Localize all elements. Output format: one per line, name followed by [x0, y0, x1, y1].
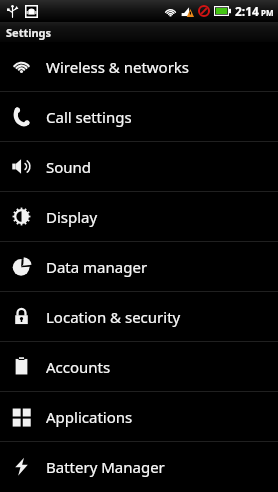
button[interactable]: Sound [0, 142, 278, 191]
button[interactable]: Data manager [0, 242, 278, 291]
staticText: Data manager [46, 257, 148, 277]
staticText: PM [261, 7, 274, 18]
button[interactable]: Wireless & networks [0, 42, 278, 91]
button[interactable]: Accounts [0, 342, 278, 391]
staticText: Location & security [46, 307, 181, 327]
staticText: Applications [46, 407, 133, 427]
staticText: 2:14 [235, 3, 259, 19]
staticText: Call settings [46, 107, 132, 127]
button[interactable]: Location & security [0, 292, 278, 341]
button[interactable]: Battery Manager [0, 442, 278, 491]
button[interactable]: Display [0, 192, 278, 241]
staticText: Display [46, 207, 98, 227]
button[interactable]: Call settings [0, 92, 278, 141]
staticText: Accounts [46, 357, 111, 377]
button[interactable]: Applications [0, 392, 278, 441]
staticText: Battery Manager [46, 457, 165, 477]
staticText: Sound [46, 157, 92, 177]
staticText: Wireless & networks [46, 57, 190, 77]
staticText: Settings [6, 25, 52, 40]
